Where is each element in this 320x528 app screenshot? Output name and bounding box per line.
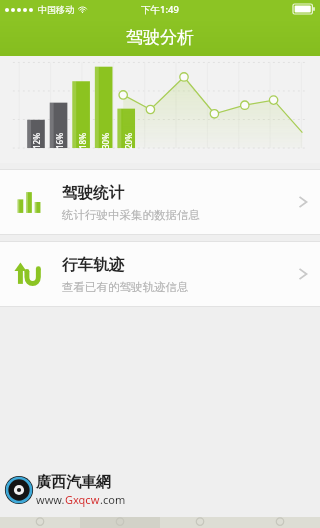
- staticText: www.: [36, 492, 65, 507]
- button[interactable]: Home: [0, 517, 80, 528]
- staticText: 20%: [123, 133, 134, 149]
- staticText: 统计行驶中采集的数据信息: [62, 208, 200, 222]
- staticText: 下午1:49: [141, 3, 179, 16]
- staticText: 廣西汽車網: [36, 473, 111, 492]
- staticText: Gxqcw: [65, 492, 100, 507]
- button[interactable]: Discover: [160, 517, 240, 528]
- staticText: 中国移动: [38, 4, 74, 15]
- staticText: 查看已有的驾驶轨迹信息: [62, 280, 189, 294]
- button[interactable]: Me: [240, 517, 320, 528]
- other: More: [298, 194, 308, 210]
- staticText: .com: [100, 492, 126, 507]
- staticText: 行车轨迹: [62, 255, 124, 275]
- button[interactable]: 驾驶统计: [0, 170, 320, 234]
- staticText: 驾驶分析: [126, 27, 194, 48]
- staticText: 12%: [31, 133, 42, 149]
- staticText: 30%: [100, 133, 111, 149]
- other: More: [298, 266, 308, 282]
- button[interactable]: 行车轨迹: [0, 242, 320, 306]
- staticText: 驾驶统计: [62, 183, 124, 203]
- staticText: 16%: [54, 133, 65, 149]
- staticText: 18%: [77, 133, 88, 149]
